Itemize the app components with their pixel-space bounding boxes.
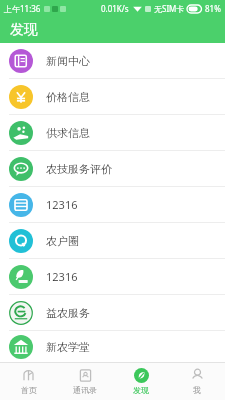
staticText: 我 <box>193 385 201 395</box>
other: 发现 <box>134 368 149 383</box>
button[interactable]: 益农服务 <box>0 295 225 330</box>
other: 我 <box>190 368 205 383</box>
staticText: 发现 <box>10 21 38 39</box>
other: 首页 <box>21 368 36 383</box>
button[interactable]: 我 <box>169 363 225 400</box>
staticText: 无SIM卡 <box>154 3 185 14</box>
button[interactable]: 新农学堂 <box>0 331 225 362</box>
button[interactable]: 农户圈 <box>0 223 225 258</box>
button[interactable]: 12316 <box>0 187 225 222</box>
other: 通讯录 <box>78 368 93 383</box>
button[interactable]: 首页 <box>0 363 57 400</box>
button[interactable]: 供求信息 <box>0 115 225 150</box>
button[interactable]: 新闻中心 <box>0 43 225 78</box>
staticText: 12316 <box>46 269 78 284</box>
button[interactable]: 价格信息 <box>0 79 225 114</box>
staticText: 供求信息 <box>46 126 90 140</box>
staticText: 发现 <box>133 385 149 395</box>
staticText: 上午11:36 <box>4 3 41 14</box>
button[interactable]: 发现 <box>113 363 169 400</box>
staticText: 通讯录 <box>73 385 97 395</box>
staticText: 农技服务评价 <box>46 162 112 176</box>
staticText: 益农服务 <box>46 306 90 320</box>
staticText: 新农学堂 <box>46 340 90 354</box>
staticText: 首页 <box>21 385 37 395</box>
staticText: 12316 <box>46 197 78 212</box>
button[interactable]: 12316 <box>0 259 225 294</box>
button[interactable]: 农技服务评价 <box>0 151 225 186</box>
staticText: 农户圈 <box>46 234 79 248</box>
staticText: 0.01K/s <box>101 3 129 14</box>
staticText: 81% <box>205 3 221 14</box>
button[interactable]: 通讯录 <box>57 363 113 400</box>
staticText: 价格信息 <box>46 90 90 104</box>
staticText: 新闻中心 <box>46 54 90 68</box>
